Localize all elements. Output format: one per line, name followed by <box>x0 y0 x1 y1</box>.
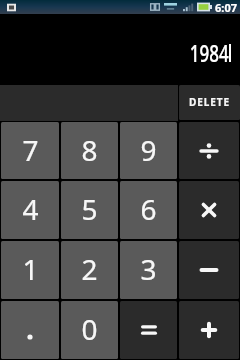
staticText: 6 <box>140 190 157 228</box>
button[interactable]: Divide <box>178 121 240 180</box>
button[interactable]: 2 <box>60 240 119 300</box>
button[interactable]: 3 <box>119 240 178 300</box>
button[interactable]: 8 <box>60 121 119 180</box>
button[interactable]: Decimal point <box>0 300 60 360</box>
staticText: 8 <box>81 131 98 169</box>
button[interactable]: Plus <box>178 300 240 360</box>
staticText: 2 <box>81 250 98 288</box>
button[interactable]: 9 <box>119 121 178 180</box>
button[interactable]: 7 <box>0 121 60 180</box>
staticText: 5 <box>81 190 98 228</box>
staticText: 6:07 <box>215 0 237 14</box>
staticText: 9 <box>140 131 157 169</box>
button[interactable]: Minus <box>178 240 240 300</box>
button[interactable]: 1 <box>0 240 60 300</box>
staticText: 1984 <box>190 37 229 68</box>
staticText: 0 <box>81 310 98 348</box>
button[interactable]: DELETE <box>178 85 240 121</box>
staticText: 7 <box>22 131 39 169</box>
staticText: 3 <box>140 250 157 288</box>
staticText: 1 <box>22 250 39 288</box>
button[interactable]: 0 <box>60 300 119 360</box>
staticText: DELETE <box>189 95 230 109</box>
button[interactable]: 6 <box>119 180 178 240</box>
button[interactable]: 4 <box>0 180 60 240</box>
staticText: 4 <box>22 190 39 228</box>
button[interactable]: 5 <box>60 180 119 240</box>
button[interactable]: Multiply <box>178 180 240 240</box>
button[interactable]: Equals <box>119 300 178 360</box>
